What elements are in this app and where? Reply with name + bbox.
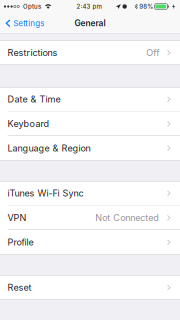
button[interactable]: Restrictions	[0, 40, 180, 65]
button[interactable]: Profile	[0, 230, 180, 254]
staticText: Optus	[23, 3, 41, 10]
button[interactable]: VPN	[0, 205, 180, 230]
staticText: Date & Time	[7, 94, 60, 105]
staticText: 98%	[139, 3, 153, 10]
staticText: Settings	[13, 18, 44, 28]
staticText: Restrictions	[7, 47, 57, 58]
button[interactable]: Reset	[0, 275, 180, 300]
staticText: Keyboard	[7, 118, 49, 129]
button[interactable]: Date & Time	[0, 87, 180, 111]
staticText: Not Connected	[95, 212, 159, 223]
staticText: Off	[146, 47, 159, 58]
staticText: 2:43 pm	[76, 3, 101, 10]
staticText: Language & Region	[7, 143, 90, 154]
button[interactable]: Keyboard	[0, 111, 180, 136]
button[interactable]: Settings	[0, 13, 49, 33]
staticText: Profile	[7, 237, 33, 248]
button[interactable]: iTunes Wi-Fi Sync	[0, 181, 180, 205]
staticText: iTunes Wi-Fi Sync	[7, 188, 83, 199]
staticText: General	[74, 18, 105, 28]
button[interactable]: Language & Region	[0, 136, 180, 160]
staticText: VPN	[7, 212, 26, 223]
staticText: Reset	[7, 282, 31, 293]
